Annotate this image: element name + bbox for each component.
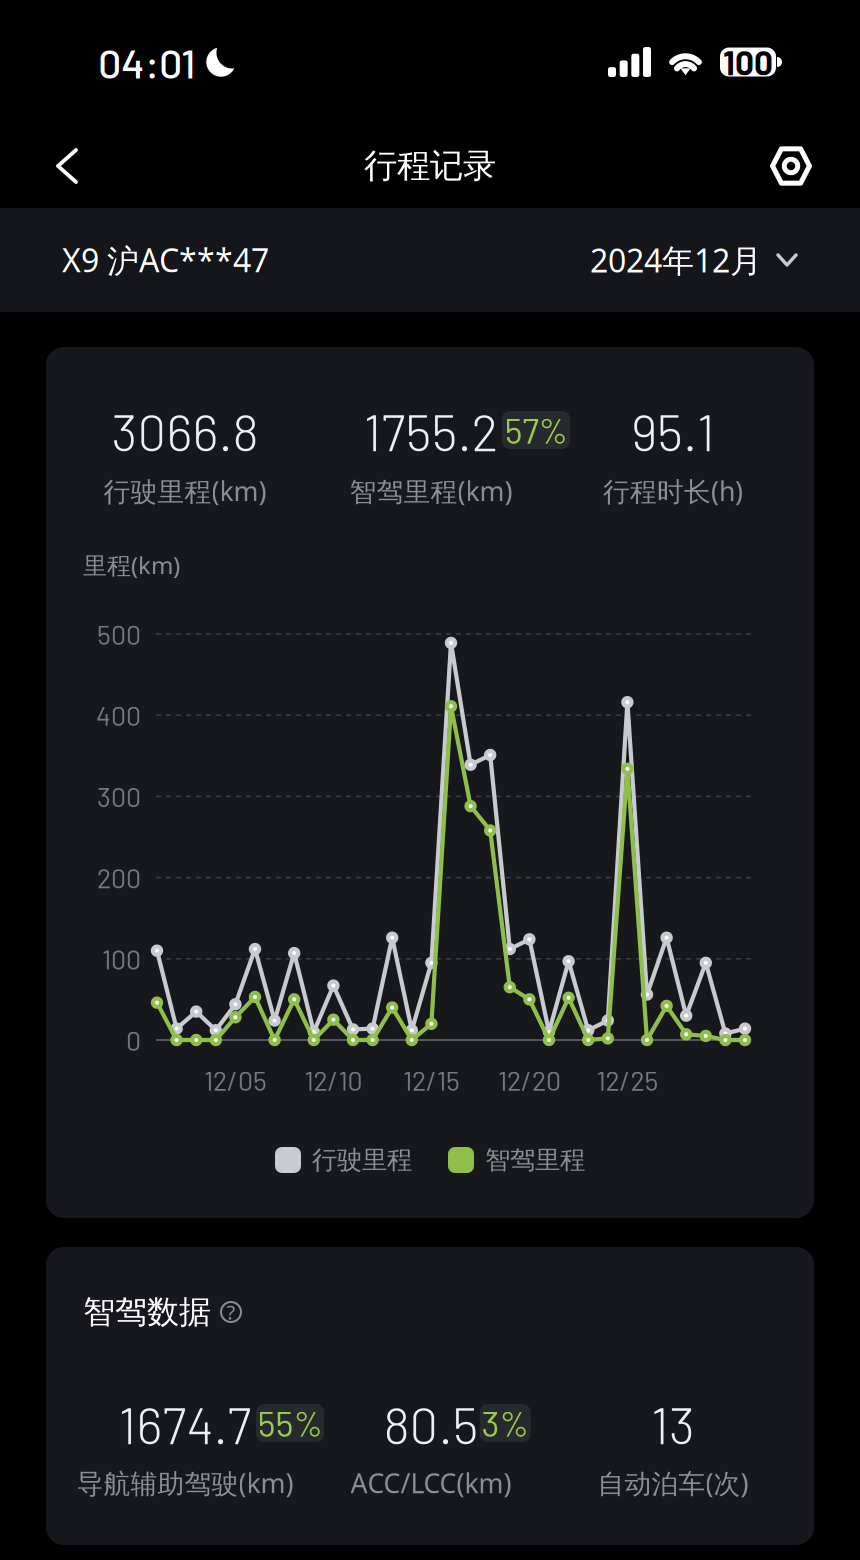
button[interactable]: 智驾数据 [83,1291,313,1333]
staticText: 12/25 [596,1064,658,1096]
staticText: 95.1 [631,401,715,461]
staticText: 自动泊车(次) [597,1465,748,1501]
staticText: 3% [482,1402,529,1444]
staticText: 57% [504,409,567,451]
staticText: 行程记录 [364,145,496,187]
button[interactable]: Back [30,123,104,209]
staticText: 80.5 [383,1394,478,1454]
staticText: 04:01 [98,37,196,87]
staticText: X9 沪AC***47 [62,238,269,282]
staticText: 12/20 [498,1064,561,1096]
staticText: 2024年12月 [590,238,762,282]
staticText: ? [226,1298,235,1326]
staticText: 行驶里程 [312,1144,412,1176]
staticText: 智驾里程 [485,1144,585,1176]
staticText: 行驶里程(km) [103,473,266,509]
staticText: 400 [96,699,141,731]
staticText: 1755.2 [363,401,498,461]
staticText: ACC/LCC(km) [350,1465,511,1501]
staticText: 12/10 [304,1064,362,1096]
staticText: 3066.8 [111,401,258,461]
staticText: 100 [102,943,141,975]
staticText: 行程时长(h) [603,473,743,509]
staticText: 导航辅助驾驶(km) [76,1465,293,1501]
staticText: 500 [97,618,141,650]
staticText: 100 [723,42,773,82]
staticText: 13 [651,1394,695,1454]
staticText: 12/05 [204,1064,267,1096]
button[interactable]: Settings [752,122,830,209]
staticText: 300 [97,780,141,812]
staticText: 智驾里程(km) [349,473,512,509]
staticText: 200 [97,862,141,894]
staticText: 12/15 [403,1064,460,1096]
staticText: 55% [257,1402,322,1444]
staticText: 里程(km) [83,549,180,581]
staticText: 智驾数据 [83,1292,211,1332]
button[interactable]: 2024年12月 [590,238,798,282]
staticText: 0 [126,1024,141,1056]
staticText: 1674.7 [118,1394,251,1454]
